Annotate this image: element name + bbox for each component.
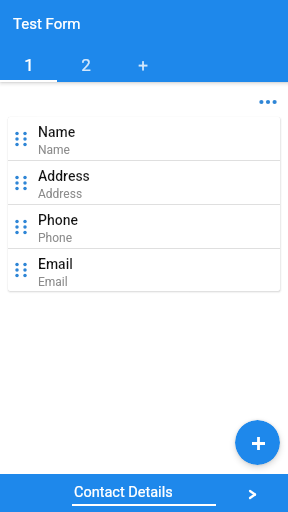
staticText: Address: [38, 168, 90, 184]
staticText: Phone: [38, 212, 78, 228]
button[interactable]: Phone: [8, 205, 280, 248]
button[interactable]: Contact Details: [72, 474, 216, 512]
staticText: 2: [81, 55, 91, 75]
button[interactable]: Next: [242, 474, 288, 512]
staticText: Address: [38, 187, 83, 201]
button[interactable]: More options: [254, 88, 282, 116]
staticText: Email: [38, 256, 73, 272]
button[interactable]: Add: [235, 420, 280, 465]
staticText: 1: [24, 55, 34, 75]
staticText: Phone: [38, 231, 73, 245]
staticText: Name: [38, 143, 70, 157]
staticText: Email: [38, 275, 68, 289]
button[interactable]: Email: [8, 249, 280, 291]
staticText: Name: [38, 124, 76, 140]
button[interactable]: 1: [0, 45, 57, 82]
button[interactable]: Address: [8, 161, 280, 204]
staticText: Test Form: [13, 15, 81, 33]
staticText: Contact Details: [74, 484, 173, 501]
button[interactable]: +: [114, 45, 171, 82]
button[interactable]: Name: [8, 117, 280, 160]
staticText: +: [138, 55, 148, 75]
button[interactable]: 2: [57, 45, 114, 82]
